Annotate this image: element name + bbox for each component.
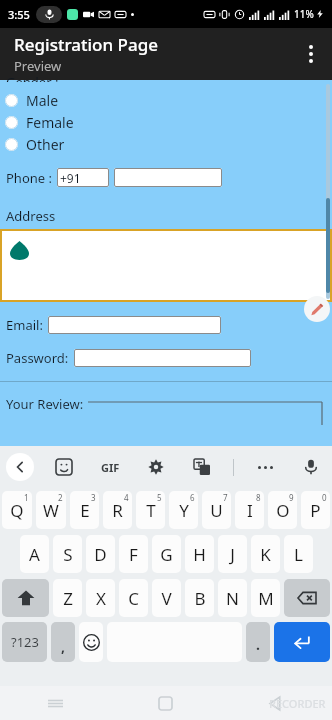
staticText: +91 <box>60 170 81 186</box>
button[interactable]: Shift <box>2 579 49 617</box>
button[interactable]: Translate <box>187 452 217 482</box>
staticText: 2 <box>58 492 63 503</box>
button[interactable]: M <box>251 579 280 617</box>
staticText: 5 <box>157 492 162 503</box>
button[interactable] <box>0 229 332 302</box>
staticText: Preview <box>14 57 62 75</box>
button[interactable]: P <box>301 491 330 529</box>
button[interactable]: A <box>20 535 49 573</box>
staticText: GIF <box>101 460 120 475</box>
button[interactable]: More <box>250 452 280 482</box>
staticText: E <box>80 499 90 522</box>
staticText: H <box>193 543 206 566</box>
staticText: J <box>230 543 235 566</box>
button[interactable]: ?123 <box>2 622 47 662</box>
staticText: S <box>63 543 73 566</box>
button[interactable]: Emoji <box>79 622 103 662</box>
staticText: . <box>256 635 260 654</box>
button[interactable]: Stickers <box>49 452 79 482</box>
staticText: 6 <box>190 492 195 503</box>
button[interactable]: D <box>86 535 115 573</box>
button[interactable]: Female <box>0 111 332 133</box>
button[interactable]: Enter <box>274 622 330 662</box>
button[interactable]: U <box>202 491 231 529</box>
staticText: C <box>128 587 139 610</box>
button[interactable]: Back <box>221 686 332 720</box>
staticText: Q <box>10 499 24 522</box>
button[interactable]: Backspace <box>284 579 330 617</box>
button[interactable]: O <box>268 491 297 529</box>
staticText: RECORDER <box>269 696 326 711</box>
staticText: 3 <box>91 492 96 503</box>
staticText: D <box>94 543 107 566</box>
button[interactable]: GIF <box>95 452 125 482</box>
staticText: K <box>260 543 271 566</box>
button[interactable]: Recents <box>0 686 110 720</box>
staticText: Other <box>26 135 65 154</box>
staticText: G <box>160 543 173 566</box>
button[interactable]: Z <box>53 579 82 617</box>
button[interactable]: , <box>51 622 75 662</box>
staticText: , <box>61 637 65 656</box>
button[interactable]: L <box>284 535 313 573</box>
button[interactable]: Y <box>169 491 198 529</box>
button[interactable]: G <box>152 535 181 573</box>
staticText: 4 <box>124 492 129 503</box>
staticText: A <box>29 543 40 566</box>
staticText: Address <box>6 207 56 225</box>
button[interactable]: More options <box>290 33 332 75</box>
button[interactable]: Home <box>110 686 221 720</box>
button[interactable]: S <box>53 535 82 573</box>
staticText: Registration Page <box>14 33 158 56</box>
button[interactable]: X <box>86 579 115 617</box>
button[interactable]: B <box>185 579 214 617</box>
button[interactable]: V <box>152 579 181 617</box>
staticText: P <box>310 499 321 522</box>
staticText: 9 <box>289 492 294 503</box>
button[interactable]: H <box>185 535 214 573</box>
staticText: V <box>161 587 172 610</box>
button[interactable]: W <box>36 491 66 529</box>
staticText: 1 <box>24 492 29 503</box>
button[interactable]: Male <box>0 89 332 111</box>
staticText: I <box>247 499 253 522</box>
staticText: M <box>258 587 274 610</box>
button[interactable]: Voice input <box>296 452 326 482</box>
button[interactable]: +91 <box>57 168 109 187</box>
staticText: 8 <box>256 492 261 503</box>
staticText: Email: <box>6 316 43 334</box>
button[interactable]: N <box>218 579 247 617</box>
button[interactable]: F <box>119 535 148 573</box>
staticText: Your Review: <box>6 395 84 413</box>
button[interactable]: Other <box>0 133 332 155</box>
staticText: Y <box>179 499 189 522</box>
staticText: Gender : <box>6 73 59 82</box>
button[interactable] <box>48 316 221 334</box>
button[interactable]: I <box>235 491 264 529</box>
button[interactable]: C <box>119 579 148 617</box>
staticText: B <box>194 587 206 610</box>
button[interactable]: K <box>251 535 280 573</box>
staticText: N <box>226 587 239 610</box>
button[interactable] <box>114 168 222 187</box>
staticText: T <box>146 499 156 522</box>
button[interactable]: Back <box>6 453 34 481</box>
button[interactable]: Settings <box>141 452 171 482</box>
staticText: 0 <box>322 492 327 503</box>
staticText: Password: <box>6 349 69 367</box>
button[interactable]: T <box>136 491 165 529</box>
button[interactable]: Edit with pen <box>304 296 330 322</box>
button[interactable] <box>74 349 251 367</box>
staticText: 3:55 <box>8 7 30 22</box>
button[interactable]: Q <box>2 491 32 529</box>
button[interactable]: E <box>70 491 99 529</box>
button[interactable]: J <box>218 535 247 573</box>
staticText: L <box>294 543 303 566</box>
staticText: Female <box>26 113 74 132</box>
button[interactable]: . <box>246 622 270 662</box>
staticText: Phone : <box>6 169 52 187</box>
button[interactable]: R <box>103 491 132 529</box>
staticText: O <box>276 499 290 522</box>
staticText: F <box>129 543 138 566</box>
